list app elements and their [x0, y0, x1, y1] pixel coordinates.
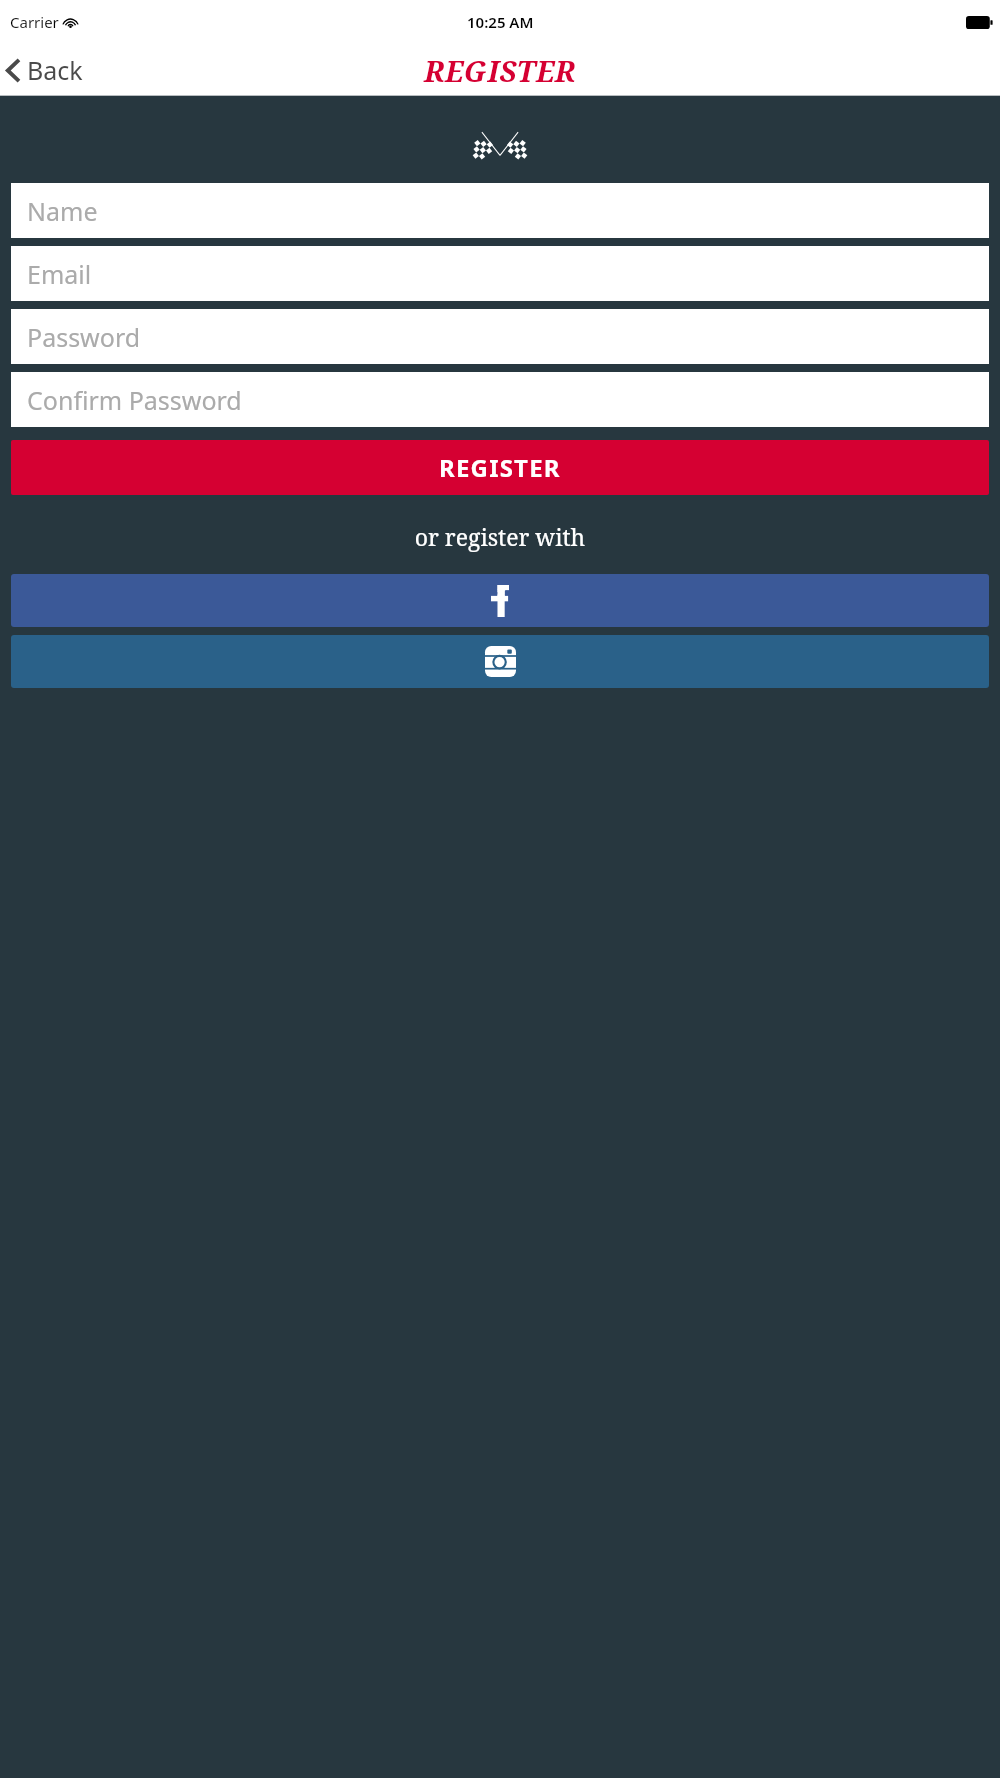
button[interactable]: Register with Facebook: [11, 574, 989, 627]
staticText: or register with: [0, 521, 1000, 552]
button[interactable]: Confirm Password: [11, 372, 989, 427]
button[interactable]: Password: [11, 309, 989, 364]
staticText: 10:25 AM: [467, 12, 534, 32]
staticText: REGISTER: [439, 451, 561, 484]
staticText: Carrier: [10, 12, 59, 32]
button[interactable]: Register with Instagram: [11, 635, 989, 688]
staticText: Password: [27, 320, 141, 354]
button[interactable]: REGISTER: [11, 440, 989, 495]
button[interactable]: Back: [0, 47, 97, 93]
staticText: REGISTER: [424, 51, 576, 90]
staticText: Name: [27, 194, 98, 228]
staticText: Confirm Password: [27, 383, 242, 417]
button[interactable]: Email: [11, 246, 989, 301]
button[interactable]: Name: [11, 183, 989, 238]
staticText: Email: [27, 257, 92, 291]
staticText: Back: [27, 53, 83, 87]
